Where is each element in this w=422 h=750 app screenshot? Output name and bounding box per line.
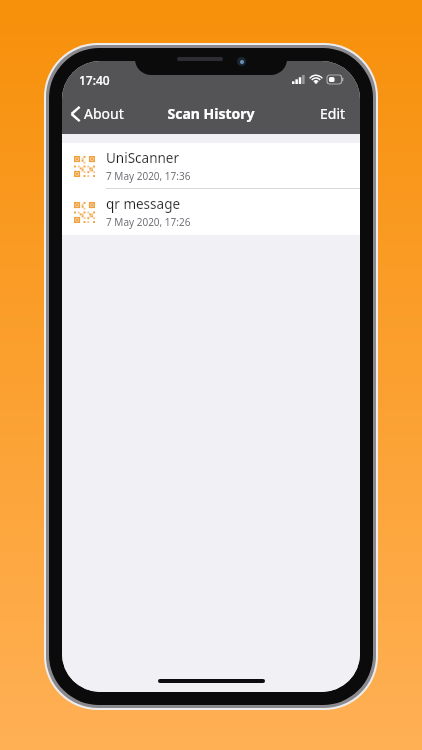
other: QR code: [74, 202, 95, 223]
button[interactable]: About: [62, 97, 134, 130]
staticText: 7 May 2020, 17:36: [106, 169, 191, 183]
staticText: Scan History: [167, 104, 255, 123]
staticText: UniScanner: [106, 149, 180, 167]
button[interactable]: QR code: [62, 143, 360, 189]
staticText: qr message: [106, 195, 181, 213]
button[interactable]: Edit: [308, 97, 360, 130]
other: QR code: [74, 156, 95, 177]
staticText: 7 May 2020, 17:26: [106, 215, 191, 229]
staticText: About: [84, 104, 124, 123]
staticText: 17:40: [79, 72, 110, 88]
button[interactable]: QR code: [62, 189, 360, 235]
staticText: Edit: [320, 104, 346, 123]
